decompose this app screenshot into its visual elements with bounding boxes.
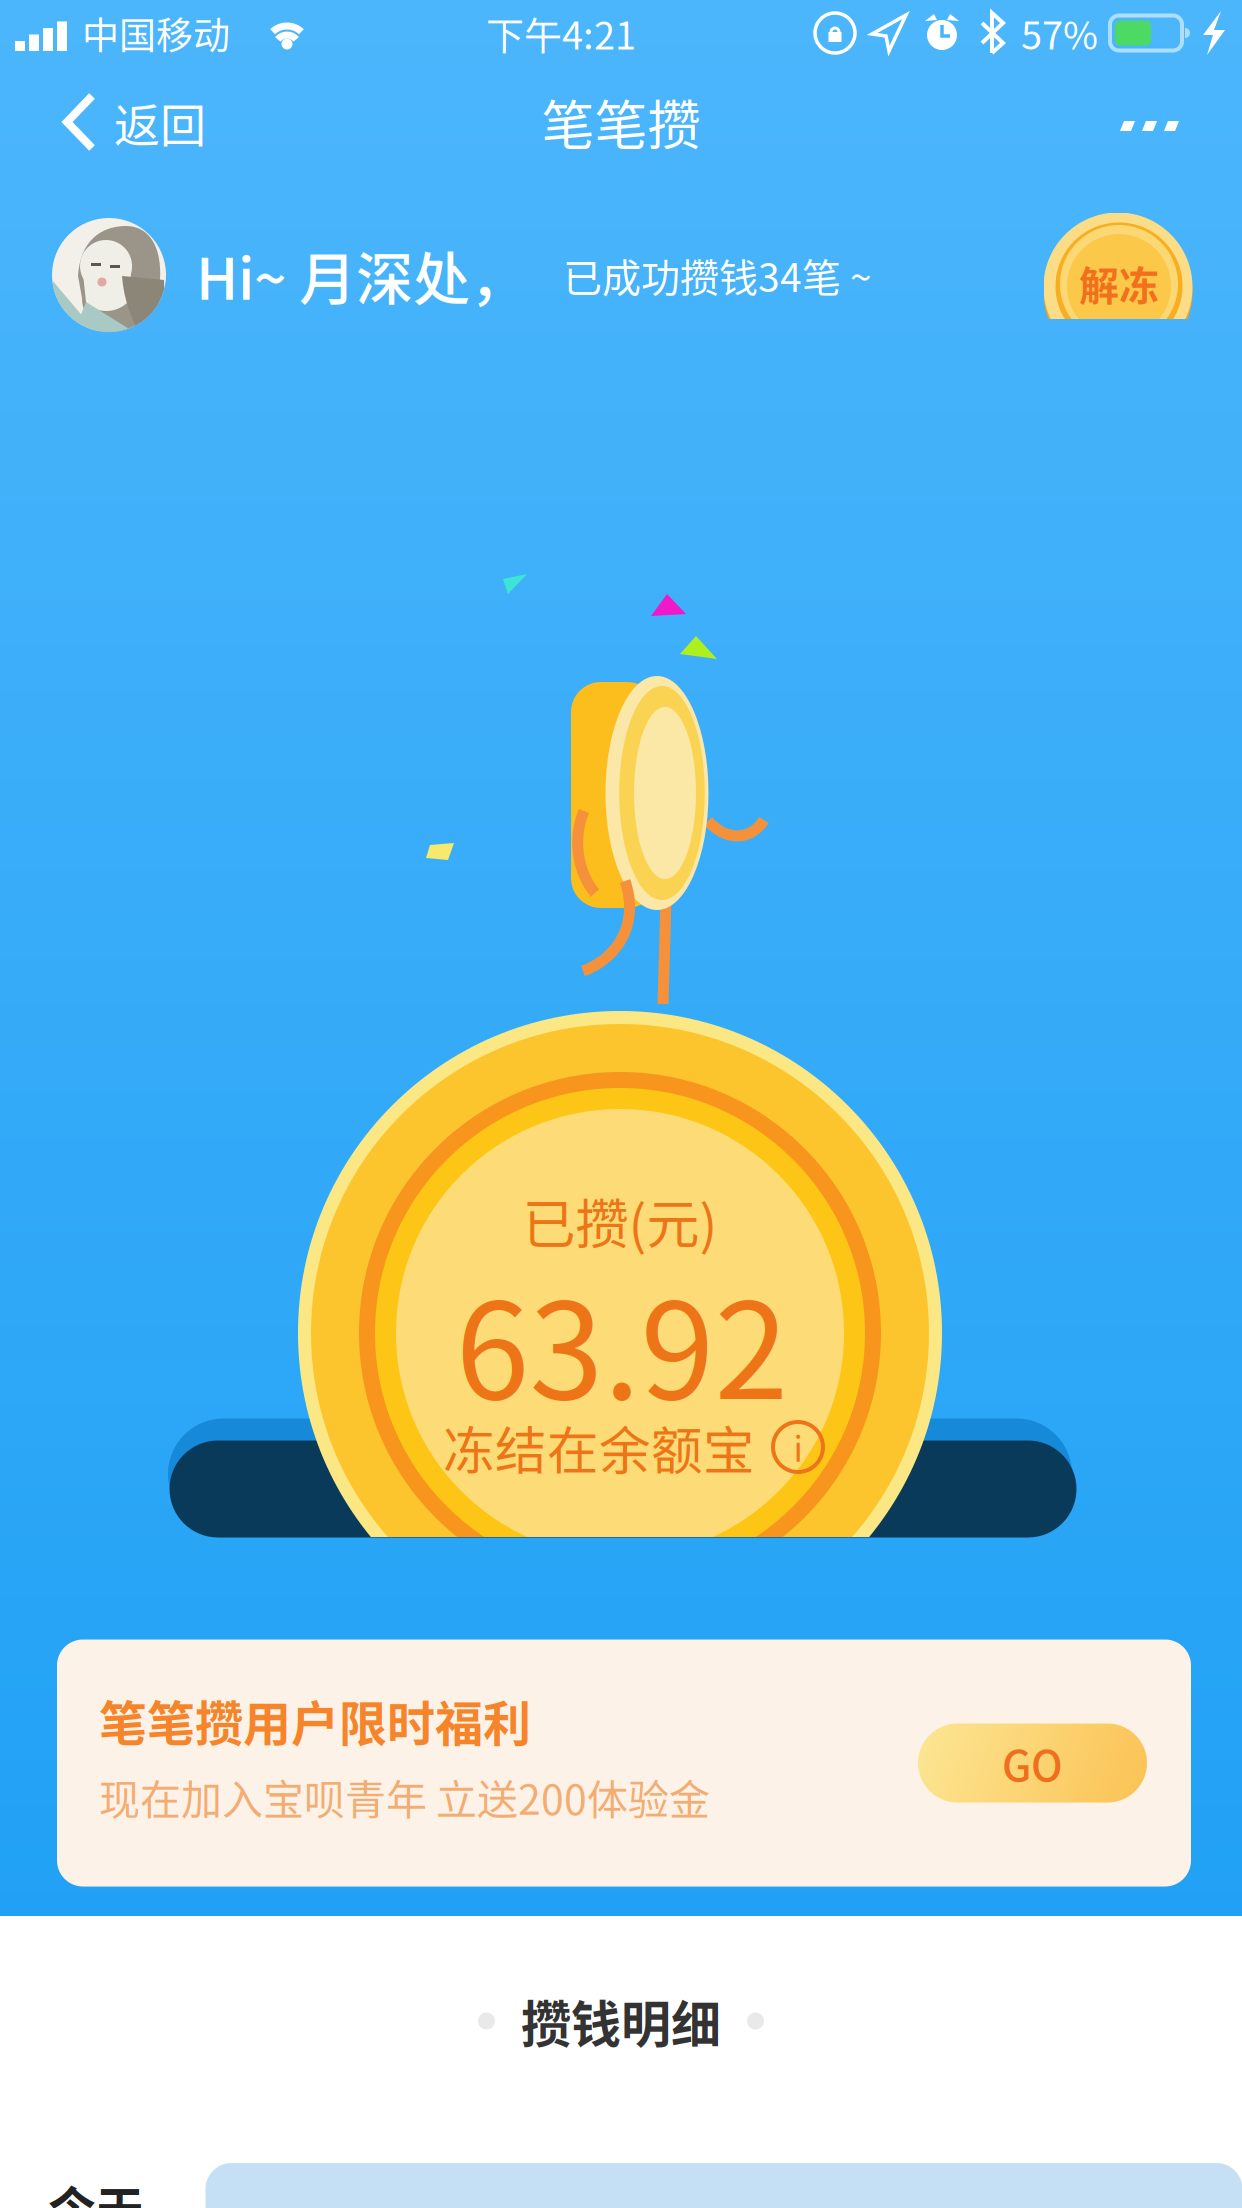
button[interactable]: 返回 [40, 75, 226, 169]
staticText: Hi~ 月深处， [196, 234, 527, 316]
button[interactable]: 笔笔攒用户限时福利 [57, 1639, 1191, 1886]
staticText: 返回 [114, 89, 206, 155]
button[interactable]: More [1098, 76, 1202, 168]
staticText: 57% [1021, 5, 1098, 60]
staticText: 今天 [48, 2171, 144, 2208]
staticText: 现在加入宝呗青年 立送200体验金 [99, 1767, 710, 1826]
staticText: 笔笔攒 [541, 84, 700, 160]
staticText: 下午4:21 [486, 5, 636, 60]
staticText: 攒钱明细 [521, 1985, 721, 2057]
button[interactable]: 解冻 [1044, 200, 1194, 350]
staticText: 63.92 [455, 1245, 788, 1437]
staticText: i [793, 1422, 802, 1472]
staticText: 已攒(元) [522, 1183, 717, 1259]
staticText: 笔笔攒用户限时福利 [99, 1686, 531, 1755]
staticText: 解冻 [1079, 254, 1159, 312]
staticText: 冻结在余额宝 [443, 1410, 755, 1484]
staticText: GO [1002, 1733, 1063, 1793]
staticText: 中国移动 [82, 6, 230, 60]
staticText: 已成功攒钱34笔 ~ [563, 247, 872, 303]
